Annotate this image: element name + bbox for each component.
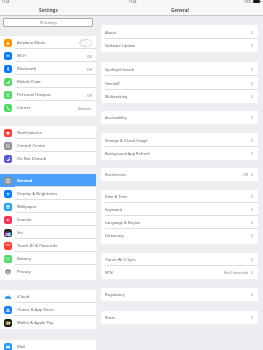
button[interactable]: Wallet & Apple Pay xyxy=(0,316,96,329)
button[interactable]: Control Centre xyxy=(0,139,96,152)
staticText: Off xyxy=(87,67,92,71)
staticText: Do Not Disturb xyxy=(17,156,47,162)
staticText: Storage & iCloud Usage xyxy=(105,138,148,143)
button[interactable]: Touch ID & Passcode xyxy=(0,239,96,252)
button[interactable]: Restrictions xyxy=(101,168,258,181)
staticText: Settings xyxy=(39,7,58,13)
button[interactable]: Date & Time xyxy=(101,190,258,203)
button[interactable]: Language & Region xyxy=(101,216,258,229)
staticText: iCloud xyxy=(17,294,30,300)
staticText: Battery xyxy=(17,256,32,262)
button[interactable]: General xyxy=(0,174,96,187)
button[interactable]: Notifications xyxy=(0,126,96,139)
button[interactable]: Keyboard xyxy=(101,203,258,216)
button[interactable]: Wi-Fi xyxy=(0,49,96,62)
staticText: Language & Region xyxy=(105,220,141,225)
staticText: General xyxy=(171,7,189,13)
staticText: Not Connected xyxy=(224,270,248,275)
button[interactable]: Sounds xyxy=(0,213,96,226)
button[interactable]: Wallpaper xyxy=(0,200,96,213)
staticText: VPN xyxy=(105,270,113,275)
staticText: iTunes & App Store xyxy=(17,307,54,313)
staticText: Settings xyxy=(44,20,57,25)
button[interactable]: Mail xyxy=(0,340,96,350)
staticText: Dictionary xyxy=(105,233,124,238)
button[interactable]: Mobile Data xyxy=(0,75,96,88)
staticText: Restrictions xyxy=(105,172,127,177)
button[interactable]: Settings xyxy=(3,18,93,27)
staticText: Mobile Data xyxy=(17,79,41,85)
staticText: 11:46 xyxy=(129,0,137,4)
staticText: Background App Refresh xyxy=(105,151,150,156)
staticText: Bluetooth xyxy=(17,66,37,72)
button[interactable]: Handoff xyxy=(101,76,258,90)
button[interactable]: Reset xyxy=(101,311,258,324)
button[interactable]: Storage & iCloud Usage xyxy=(101,133,258,147)
button[interactable]: Background App Refresh xyxy=(101,147,258,160)
button[interactable]: iTunes & App Store xyxy=(0,303,96,316)
button[interactable]: VPN xyxy=(101,266,258,279)
staticText: Handoff xyxy=(105,81,120,86)
staticText: Carrier xyxy=(17,105,31,111)
button[interactable]: Regulatory xyxy=(101,288,258,301)
button[interactable]: Privacy xyxy=(0,265,96,278)
staticText: Control Centre xyxy=(17,143,46,149)
button[interactable]: Bluetooth xyxy=(0,62,96,75)
button[interactable]: Carrier xyxy=(0,101,96,114)
staticText: Wallet & Apple Pay xyxy=(17,320,54,326)
staticText: Wi-Fi xyxy=(17,53,27,59)
button[interactable]: Spotlight Search xyxy=(101,62,258,76)
button[interactable]: Software Update xyxy=(101,39,258,52)
staticText: Network xyxy=(78,106,92,110)
staticText: Notifications xyxy=(17,130,42,136)
staticText: 100% xyxy=(244,0,252,4)
button[interactable]: Dictionary xyxy=(101,229,258,242)
staticText: Display & Brightness xyxy=(17,191,58,197)
staticText: Sounds xyxy=(17,217,32,223)
staticText: Reset xyxy=(105,315,115,320)
staticText: Airplane Mode xyxy=(17,40,46,46)
button[interactable]: Multitasking xyxy=(101,90,258,103)
staticText: Wallpaper xyxy=(17,204,37,210)
staticText: Multitasking xyxy=(105,94,128,99)
button[interactable]: About xyxy=(101,25,258,39)
staticText: General xyxy=(17,178,33,184)
staticText: Accessibility xyxy=(105,115,127,120)
staticText: iTunes Wi-Fi Sync xyxy=(105,257,136,262)
button[interactable]: Display & Brightness xyxy=(0,187,96,200)
staticText: About xyxy=(105,30,116,35)
button[interactable]: Personal Hotspot xyxy=(0,88,96,101)
staticText: Software Update xyxy=(105,43,136,48)
staticText: Siri xyxy=(17,230,24,236)
staticText: Touch ID & Passcode xyxy=(17,243,58,249)
button[interactable]: Airplane Mode xyxy=(0,36,96,49)
staticText: Off xyxy=(243,172,248,177)
button[interactable]: Battery xyxy=(0,252,96,265)
staticText: Keyboard xyxy=(105,207,123,212)
button[interactable]: Accessibility xyxy=(101,111,258,124)
staticText: 11:46 xyxy=(2,0,10,4)
staticText: Personal Hotspot xyxy=(17,92,51,98)
staticText: Spotlight Search xyxy=(105,67,135,72)
staticText: Off xyxy=(87,54,92,58)
button[interactable]: Do Not Disturb xyxy=(0,152,96,165)
button[interactable]: iTunes Wi-Fi Sync xyxy=(101,253,258,266)
staticText: Off xyxy=(87,93,92,97)
button[interactable]: Siri xyxy=(0,226,96,239)
staticText: Date & Time xyxy=(105,194,128,199)
button[interactable]: iCloud xyxy=(0,290,96,303)
staticText: Regulatory xyxy=(105,292,125,297)
staticText: Mail xyxy=(17,344,26,350)
staticText: Privacy xyxy=(17,269,31,275)
